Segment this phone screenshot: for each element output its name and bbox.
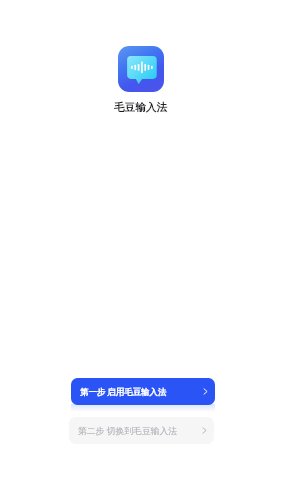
staticText: 第二步 切换到毛豆输入法 bbox=[78, 425, 178, 437]
staticText: 毛豆输入法 bbox=[114, 101, 167, 114]
staticText: 第一步 启用毛豆输入法 bbox=[80, 386, 167, 397]
button[interactable]: 第二步 切换到毛豆输入法 bbox=[69, 417, 214, 444]
button[interactable]: 第一步 启用毛豆输入法 bbox=[71, 378, 215, 405]
